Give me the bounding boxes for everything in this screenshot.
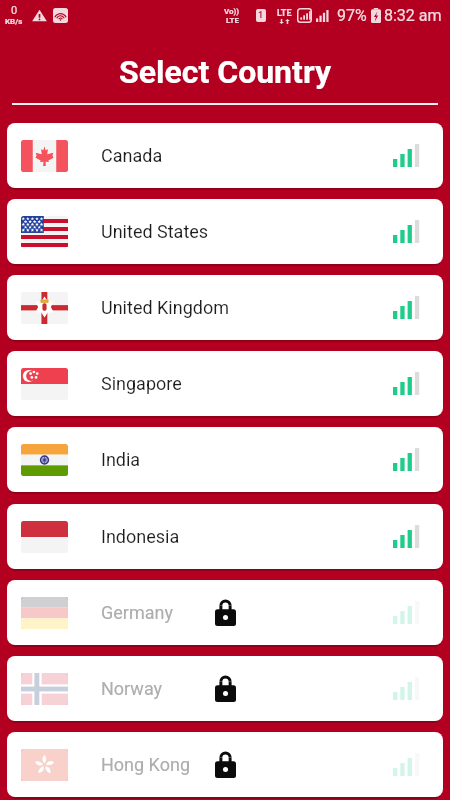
button[interactable]: Canada (7, 123, 443, 188)
staticText: Norway (101, 678, 163, 699)
staticText: United Kingdom (101, 297, 229, 318)
staticText: Singapore (101, 373, 182, 394)
staticText: India (101, 449, 141, 470)
button[interactable]: Hong Kong (7, 732, 443, 797)
staticText: LTE (277, 8, 292, 19)
staticText: 97% (337, 6, 367, 25)
button[interactable]: Indonesia (7, 504, 443, 569)
staticText: LTE (226, 16, 239, 25)
staticText: Hong Kong (101, 754, 190, 775)
other: Locked (215, 600, 236, 626)
staticText: Vo)) (224, 7, 240, 16)
button[interactable]: India (7, 427, 443, 492)
staticText: KB/s (5, 17, 23, 26)
button[interactable]: Norway (7, 656, 443, 721)
button[interactable]: Singapore (7, 351, 443, 416)
staticText: United States (101, 221, 209, 242)
staticText: Select Country (0, 53, 450, 91)
other: Locked (215, 752, 236, 778)
staticText: Germany (101, 602, 173, 623)
staticText: 0 (11, 4, 18, 17)
other: Locked (215, 676, 236, 702)
staticText: 1 (258, 10, 264, 21)
button[interactable]: Germany (7, 580, 443, 645)
staticText: 8:32 am (384, 6, 442, 25)
button[interactable]: United Kingdom (7, 275, 443, 340)
button[interactable]: United States (7, 199, 443, 264)
staticText: Canada (101, 145, 163, 166)
staticText: Indonesia (101, 526, 180, 547)
